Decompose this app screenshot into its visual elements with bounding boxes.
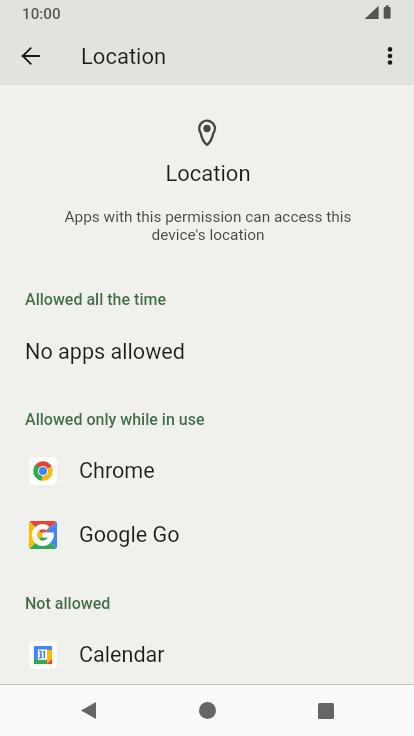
staticText: Location	[1, 161, 414, 187]
button[interactable]: No apps allowed	[0, 328, 414, 384]
staticText: Apps with this permission can access thi…	[57, 208, 359, 244]
staticText: Allowed all the time	[25, 290, 166, 309]
staticText: Not allowed	[25, 594, 111, 613]
button[interactable]: Home	[167, 685, 247, 736]
staticText: 10:00	[22, 5, 61, 23]
button[interactable]: Calendar	[0, 630, 414, 690]
staticText: Chrome	[79, 458, 155, 483]
button[interactable]: Recent apps	[286, 685, 366, 736]
staticText: Google Go	[79, 522, 180, 547]
staticText: Location	[81, 44, 167, 70]
button[interactable]: Google Go	[0, 510, 414, 570]
button[interactable]: More options	[366, 32, 414, 80]
button[interactable]: Back	[6, 32, 54, 80]
staticText: Allowed only while in use	[25, 410, 205, 429]
staticText: Calendar	[79, 642, 165, 667]
staticText: No apps allowed	[25, 339, 185, 364]
button[interactable]: Chrome	[0, 446, 414, 506]
button[interactable]: Back	[48, 685, 128, 736]
